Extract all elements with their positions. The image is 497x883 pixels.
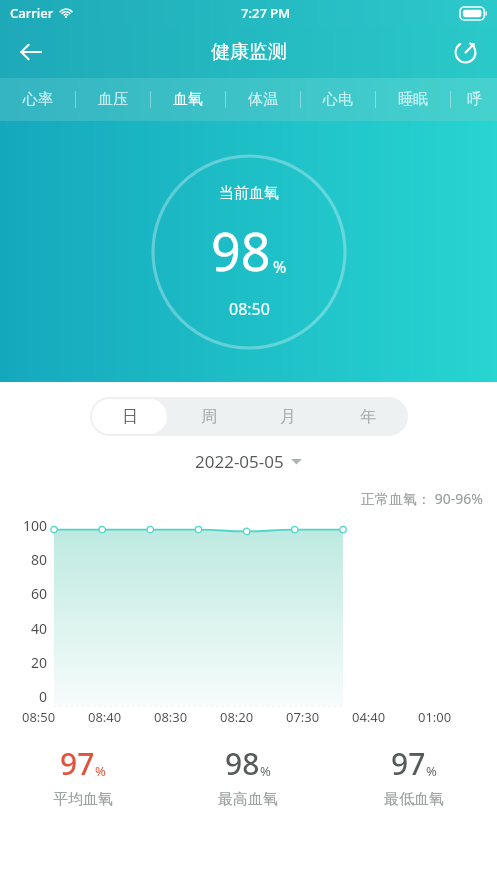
staticText: 08:50	[22, 708, 56, 726]
staticText: 08:20	[220, 708, 254, 726]
staticText: 周	[201, 407, 217, 427]
button[interactable]: 周	[171, 399, 246, 434]
staticText: 01:00	[418, 708, 452, 726]
staticText: 平均血氧	[53, 790, 113, 809]
staticText: 80	[31, 550, 48, 569]
staticText: 60	[31, 584, 48, 603]
staticText: 98	[211, 215, 271, 286]
staticText: %	[260, 762, 271, 780]
staticText: 0	[39, 687, 48, 706]
button[interactable]: 血压	[76, 78, 150, 121]
staticText: 月	[280, 407, 296, 427]
button[interactable]: 体温	[226, 78, 300, 121]
staticText: 日	[122, 407, 138, 427]
staticText: 40	[31, 619, 48, 638]
button[interactable]: 2022-05-05	[0, 450, 497, 473]
staticText: 睡眠	[398, 90, 428, 109]
button[interactable]: 当前血氧	[151, 154, 347, 350]
staticText: %	[426, 762, 437, 780]
staticText: Carrier	[10, 4, 54, 22]
staticText: 血压	[98, 90, 128, 109]
staticText: 07:30	[286, 708, 320, 726]
button[interactable]: Refresh	[443, 30, 487, 74]
staticText: 04:40	[352, 708, 386, 726]
staticText: 08:30	[154, 708, 188, 726]
button[interactable]: 97	[331, 743, 497, 809]
staticText: 97	[391, 743, 426, 784]
button[interactable]: 心率	[0, 78, 75, 121]
staticText: 7:27 PM	[241, 4, 291, 22]
button[interactable]: Back	[8, 29, 54, 75]
button[interactable]: 98	[165, 743, 331, 809]
staticText: 最高血氧	[218, 790, 278, 809]
staticText: %	[95, 762, 106, 780]
staticText: 20	[31, 653, 48, 672]
button[interactable]: 血氧	[151, 78, 225, 121]
staticText: 血氧	[173, 90, 203, 109]
button[interactable]: 97	[0, 743, 165, 809]
staticText: %	[273, 256, 287, 278]
staticText: 98	[225, 743, 260, 784]
staticText: 2022-05-05	[195, 450, 284, 473]
staticText: 08:40	[88, 708, 122, 726]
staticText: 97	[60, 743, 95, 784]
staticText: 呼	[467, 90, 482, 109]
button[interactable]: 心电	[301, 78, 375, 121]
staticText: 心率	[23, 90, 53, 109]
staticText: 健康监测	[211, 40, 287, 64]
staticText: 心电	[323, 90, 353, 109]
staticText: 最低血氧	[384, 790, 444, 809]
staticText: 100	[23, 516, 48, 535]
staticText: 08:50	[229, 298, 270, 320]
staticText: 正常血氧： 90-96%	[361, 489, 483, 508]
button[interactable]: 月	[250, 399, 326, 434]
button[interactable]: 睡眠	[376, 78, 450, 121]
staticText: 年	[360, 407, 376, 427]
staticText: 体温	[248, 90, 278, 109]
button[interactable]: 年	[330, 399, 406, 434]
button[interactable]: 呼	[451, 78, 497, 121]
button[interactable]: 日	[92, 399, 167, 434]
staticText: 当前血氧	[219, 184, 279, 203]
